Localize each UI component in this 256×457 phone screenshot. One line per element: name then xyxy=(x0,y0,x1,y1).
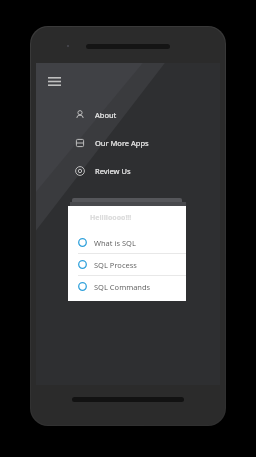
button[interactable]: SQL Commands xyxy=(68,276,186,297)
button[interactable]: Our More Apps xyxy=(74,134,194,152)
button[interactable]: Review Us xyxy=(74,162,194,180)
staticText: Our More Apps xyxy=(95,138,149,148)
button[interactable]: What is SQL xyxy=(68,232,186,253)
button[interactable]: About xyxy=(74,106,194,124)
staticText: SQL Commands xyxy=(94,282,151,292)
button[interactable]: Open navigation menu xyxy=(40,67,68,95)
staticText: Helllloooo!!! xyxy=(90,213,132,223)
button[interactable]: SQL Process xyxy=(68,254,186,275)
staticText: What is SQL xyxy=(94,238,136,248)
staticText: SQL Process xyxy=(94,260,137,270)
staticText: Review Us xyxy=(95,166,131,176)
staticText: About xyxy=(95,110,117,120)
